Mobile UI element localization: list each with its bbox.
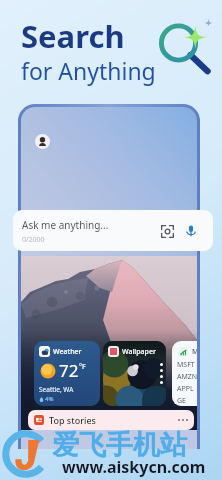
staticText: Ask me anything... xyxy=(22,218,109,232)
staticText: GE xyxy=(177,396,186,406)
staticText: Seattle, WA xyxy=(39,385,74,394)
staticText: MSFT xyxy=(177,360,195,370)
staticText: Top stories xyxy=(49,414,96,426)
button[interactable]: Top stories xyxy=(28,410,194,430)
staticText: www.aiskycn.com xyxy=(62,456,206,478)
button[interactable]: Wallpaper xyxy=(103,341,166,406)
staticText: AMZN xyxy=(177,372,197,382)
staticText: °F xyxy=(79,362,86,372)
button[interactable]: Ask me anything... xyxy=(13,210,213,251)
staticText: Weather xyxy=(53,347,82,357)
button[interactable]: Profile xyxy=(35,134,50,149)
staticText: APPL xyxy=(177,384,194,394)
other: Search xyxy=(156,16,216,76)
button[interactable]: Voice search xyxy=(181,221,201,241)
staticText: 4% xyxy=(45,395,54,403)
button[interactable]: Search by image xyxy=(157,221,177,241)
staticText: Wallpaper xyxy=(122,347,156,357)
staticText: for Anything xyxy=(21,55,156,86)
staticText: 爱飞手机站 xyxy=(52,428,187,462)
staticText: 72 xyxy=(59,359,79,382)
staticText: Search xyxy=(21,15,125,57)
button[interactable]: Weather xyxy=(34,341,100,406)
staticText: M xyxy=(192,347,197,357)
button[interactable]: M xyxy=(172,341,197,406)
staticText: 0/2000 xyxy=(22,235,45,245)
